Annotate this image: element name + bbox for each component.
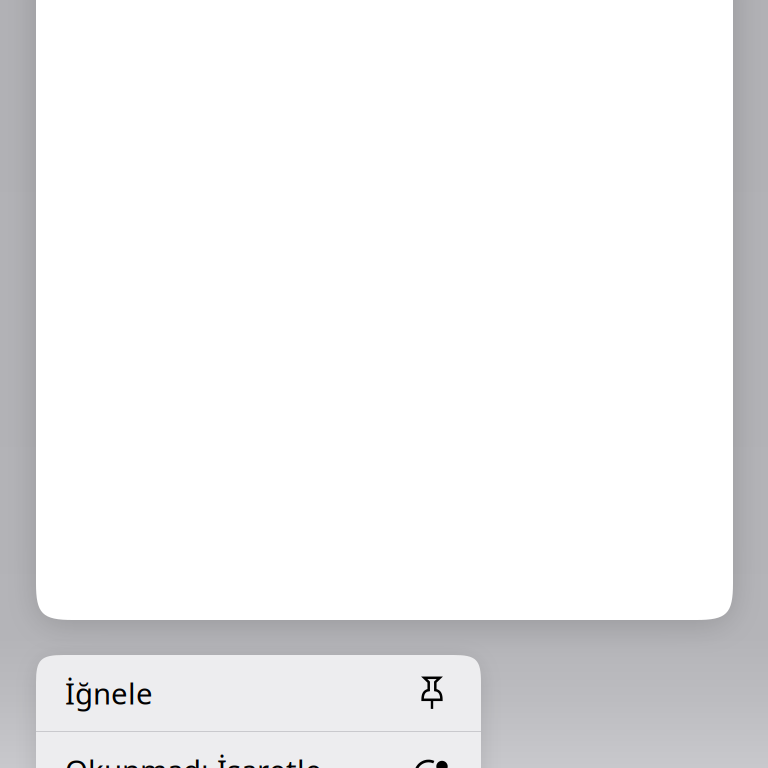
button[interactable]: İğnele	[36, 655, 481, 731]
staticText: Okunmadı İşaretle	[65, 750, 322, 768]
button[interactable]: Okunmadı İşaretle	[36, 732, 481, 768]
staticText: İğnele	[65, 673, 153, 712]
